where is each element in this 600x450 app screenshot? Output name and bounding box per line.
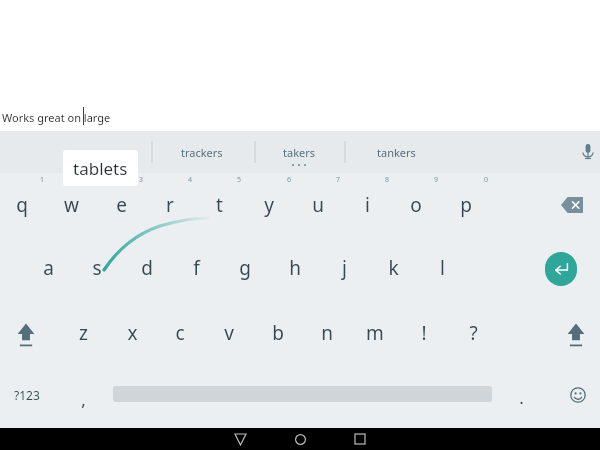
staticText: h xyxy=(289,255,301,281)
staticText: d xyxy=(141,255,153,281)
button[interactable]: Enter xyxy=(545,252,577,286)
button[interactable]: Voice input xyxy=(578,141,598,163)
staticText: s xyxy=(92,255,102,281)
button[interactable]: b xyxy=(256,311,300,355)
button[interactable]: Back xyxy=(229,428,251,450)
staticText: . xyxy=(519,386,524,409)
button[interactable]: ? xyxy=(451,311,495,355)
button[interactable]: trackers xyxy=(172,142,232,162)
button[interactable]: Home xyxy=(289,428,311,450)
button[interactable]: ?123 xyxy=(4,380,50,410)
button[interactable]: x xyxy=(110,311,154,355)
staticText: b xyxy=(272,320,284,346)
button[interactable]: p xyxy=(444,183,488,227)
staticText: , xyxy=(81,388,86,411)
staticText: m xyxy=(366,320,384,346)
button[interactable]: a xyxy=(26,246,70,290)
button[interactable]: takers xyxy=(275,142,323,162)
staticText: j xyxy=(342,255,347,281)
staticText: o xyxy=(410,192,422,218)
staticText: Works great on large xyxy=(2,110,111,125)
button[interactable]: v xyxy=(207,311,251,355)
staticText: c xyxy=(175,320,185,346)
button[interactable]: . xyxy=(499,375,543,419)
button[interactable]: tablets xyxy=(63,150,138,186)
staticText: ? xyxy=(469,320,478,346)
button[interactable]: q xyxy=(0,183,44,227)
staticText: 1 xyxy=(40,175,45,185)
staticText: q xyxy=(16,192,28,218)
staticText: 3 xyxy=(139,175,144,185)
staticText: 9 xyxy=(434,175,439,185)
button[interactable]: e xyxy=(99,183,143,227)
staticText: 8 xyxy=(385,175,390,185)
staticText: 7 xyxy=(336,175,341,185)
button[interactable]: f xyxy=(174,246,218,290)
staticText: takers xyxy=(283,145,316,160)
button[interactable]: w xyxy=(49,183,93,227)
staticText: e xyxy=(116,192,127,218)
button[interactable]: j xyxy=(322,246,366,290)
staticText: y xyxy=(264,192,274,218)
button[interactable]: z xyxy=(61,311,105,355)
button[interactable]: m xyxy=(353,311,397,355)
button[interactable]: s xyxy=(75,246,119,290)
button[interactable]: , xyxy=(61,377,105,421)
staticText: z xyxy=(79,320,88,346)
staticText: a xyxy=(43,255,54,281)
button[interactable]: g xyxy=(223,246,267,290)
button[interactable]: u xyxy=(296,183,340,227)
staticText: i xyxy=(365,192,370,218)
staticText: w xyxy=(64,192,79,218)
staticText: p xyxy=(460,192,472,218)
button[interactable]: o xyxy=(394,183,438,227)
staticText: ?123 xyxy=(14,387,40,403)
button[interactable]: k xyxy=(371,246,415,290)
button[interactable]: t xyxy=(197,183,241,227)
staticText: k xyxy=(388,255,399,281)
staticText: 6 xyxy=(287,175,292,185)
staticText: g xyxy=(239,255,251,281)
button[interactable]: Shift right xyxy=(558,316,594,354)
staticText: t xyxy=(216,192,223,218)
staticText: x xyxy=(127,320,138,346)
button[interactable]: tankers xyxy=(368,142,424,162)
button[interactable]: h xyxy=(273,246,317,290)
button[interactable]: Emoji xyxy=(563,380,593,410)
button[interactable]: Shift xyxy=(8,316,44,354)
staticText: f xyxy=(193,255,200,281)
staticText: 5 xyxy=(237,175,242,185)
button[interactable]: y xyxy=(247,183,291,227)
button[interactable]: l xyxy=(420,246,464,290)
staticText: 0 xyxy=(484,175,489,185)
staticText: 4 xyxy=(188,175,193,185)
button[interactable]: i xyxy=(345,183,389,227)
button[interactable]: Works great on large xyxy=(2,108,202,126)
staticText: trackers xyxy=(181,145,223,160)
staticText: n xyxy=(321,320,333,346)
staticText: l xyxy=(440,255,445,281)
staticText: v xyxy=(224,320,234,346)
button[interactable]: Backspace xyxy=(552,186,592,224)
button[interactable]: n xyxy=(305,311,349,355)
staticText: tablets xyxy=(73,157,128,180)
button[interactable]: ! xyxy=(402,311,446,355)
button[interactable]: d xyxy=(125,246,169,290)
staticText: tankers xyxy=(377,145,416,160)
button[interactable]: r xyxy=(148,183,192,227)
staticText: r xyxy=(166,192,174,218)
button[interactable]: c xyxy=(158,311,202,355)
staticText: ! xyxy=(421,320,427,346)
button[interactable]: Recents xyxy=(349,428,371,450)
staticText: u xyxy=(312,192,324,218)
